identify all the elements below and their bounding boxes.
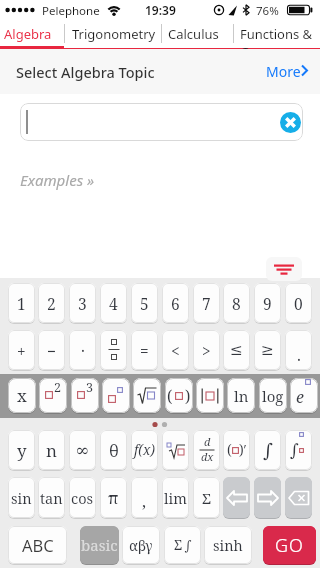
button[interactable]: Σ ∫ <box>164 526 201 564</box>
button[interactable]: ∫ <box>254 430 281 470</box>
button[interactable]: f(x) <box>131 430 158 470</box>
button[interactable] <box>133 378 161 413</box>
staticText: x <box>17 384 27 407</box>
button[interactable]: 4 <box>100 283 127 323</box>
button[interactable]: Calculus <box>161 20 233 47</box>
button[interactable]: Algebra <box>0 20 64 47</box>
button[interactable]: αβγ <box>122 526 160 564</box>
button[interactable]: 0 <box>285 283 312 323</box>
button[interactable] <box>223 477 250 518</box>
button[interactable]: 6 <box>162 283 189 323</box>
button[interactable] <box>102 378 130 413</box>
staticText: sinh <box>213 535 243 555</box>
button[interactable]: ∞ <box>69 430 96 470</box>
button[interactable]: GO <box>263 526 316 564</box>
staticText: 3 <box>78 293 87 314</box>
button[interactable]: ≤ <box>223 330 250 370</box>
button[interactable]: sin <box>8 477 35 518</box>
staticText: · <box>81 340 85 361</box>
staticText: θ <box>109 439 119 461</box>
staticText: d <box>204 434 211 449</box>
button[interactable]: 8 <box>223 283 250 323</box>
button[interactable] <box>266 257 302 281</box>
button[interactable] <box>100 330 127 370</box>
button[interactable]: ln <box>227 378 255 413</box>
button[interactable]: d <box>193 430 220 470</box>
button[interactable]: 1 <box>8 283 35 323</box>
staticText: > <box>202 340 211 361</box>
button[interactable] <box>285 477 312 518</box>
button[interactable]: log <box>259 378 287 413</box>
button[interactable]: π <box>100 477 127 518</box>
button[interactable]: 2 <box>39 378 67 413</box>
staticText: ≥ <box>261 341 274 359</box>
staticText: ∫ <box>290 440 299 460</box>
button[interactable] <box>162 430 189 470</box>
button[interactable]: More <box>266 55 314 87</box>
staticText: 0 <box>294 293 303 314</box>
staticText: ∫ <box>263 439 273 461</box>
button[interactable]: tan <box>38 477 65 518</box>
button[interactable]: lim <box>162 477 189 518</box>
button[interactable]: 7 <box>193 283 220 323</box>
staticText: tan <box>40 488 63 508</box>
button[interactable]: > <box>193 330 220 370</box>
staticText: < <box>171 340 180 361</box>
staticText: 3 <box>86 379 93 396</box>
staticText: 76% <box>256 3 279 19</box>
button[interactable]: sinh <box>204 526 252 564</box>
staticText: n <box>46 439 57 462</box>
staticText: ( <box>227 441 232 459</box>
button[interactable]: cos <box>69 477 96 518</box>
button[interactable]: ABC <box>8 526 67 564</box>
button[interactable]: n <box>38 430 65 470</box>
staticText: dx <box>201 449 214 464</box>
button[interactable]: , <box>131 477 158 518</box>
button[interactable]: . <box>285 330 312 370</box>
staticText: f(x) <box>134 441 156 459</box>
staticText: ABC <box>22 534 54 556</box>
button[interactable] <box>196 378 224 413</box>
staticText: basic <box>81 535 118 555</box>
staticText: π <box>108 487 119 509</box>
staticText: 9 <box>263 293 272 314</box>
button[interactable]: Trigonometry <box>64 20 161 47</box>
button[interactable]: < <box>162 330 189 370</box>
button[interactable]: = <box>131 330 158 370</box>
staticText: 2 <box>54 379 61 396</box>
button[interactable]: Functions & Gr <box>233 20 320 47</box>
button[interactable]: ∫ <box>285 430 312 470</box>
button[interactable]: Examples » <box>20 170 120 192</box>
button[interactable]: y <box>8 430 35 470</box>
button[interactable]: + <box>8 330 35 370</box>
staticText: 19:39 <box>145 2 176 18</box>
staticText: ≤ <box>230 341 243 359</box>
staticText: . <box>297 344 301 365</box>
button[interactable]: x <box>8 378 36 413</box>
button[interactable]: 9 <box>254 283 281 323</box>
button[interactable]: basic <box>80 526 119 564</box>
button[interactable]: ≥ <box>254 330 281 370</box>
button[interactable]: · <box>69 330 96 370</box>
button[interactable]: 5 <box>131 283 158 323</box>
button[interactable]: ( <box>165 378 193 413</box>
button[interactable]: Σ <box>193 477 220 518</box>
staticText: ( <box>167 385 173 406</box>
staticText: sin <box>11 488 32 508</box>
staticText: 4 <box>109 293 118 314</box>
button[interactable]: 3 <box>69 283 96 323</box>
button[interactable] <box>20 103 303 141</box>
staticText: e <box>296 386 304 408</box>
staticText: cos <box>71 488 94 508</box>
button[interactable]: 3 <box>71 378 99 413</box>
button[interactable]: − <box>38 330 65 370</box>
button[interactable]: 2 <box>38 283 65 323</box>
button[interactable]: θ <box>100 430 127 470</box>
button[interactable] <box>254 477 281 518</box>
staticText: Pelephone <box>42 3 100 19</box>
staticText: )′ <box>239 441 247 459</box>
staticText: , <box>142 490 147 512</box>
button[interactable]: e <box>290 378 318 413</box>
button[interactable]: ( <box>223 430 250 470</box>
button[interactable] <box>280 112 301 133</box>
